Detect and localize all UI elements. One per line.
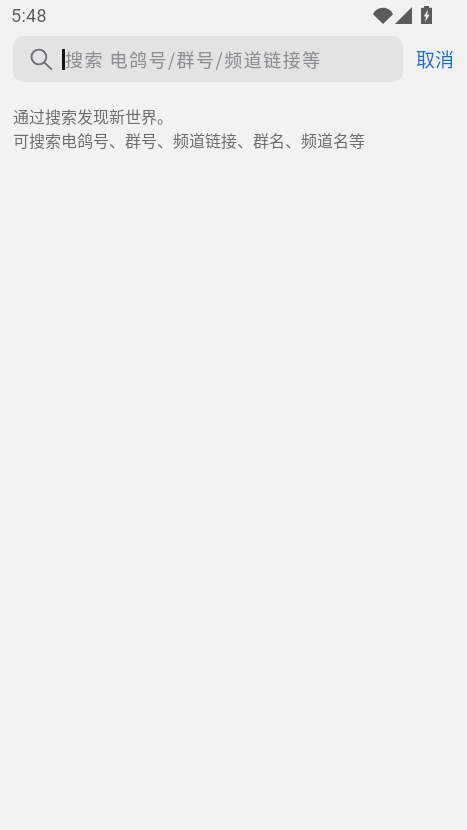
staticText: 取消 bbox=[416, 45, 455, 73]
other: Wi-Fi signal bbox=[373, 7, 393, 24]
button[interactable]: 取消 bbox=[403, 36, 467, 82]
other: Mobile signal bbox=[395, 7, 412, 24]
other: Battery charging bbox=[421, 6, 432, 24]
staticText: 通过搜索发现新世界。 bbox=[13, 104, 174, 127]
staticText: 可搜索电鸽号、群号、频道链接、群名、频道名等 bbox=[13, 128, 366, 151]
staticText: 搜索 电鸽号/群号/频道链接等 bbox=[65, 46, 322, 72]
staticText: 5:48 bbox=[11, 5, 47, 26]
button[interactable]: 搜索 电鸽号/群号/频道链接等 bbox=[13, 36, 403, 82]
